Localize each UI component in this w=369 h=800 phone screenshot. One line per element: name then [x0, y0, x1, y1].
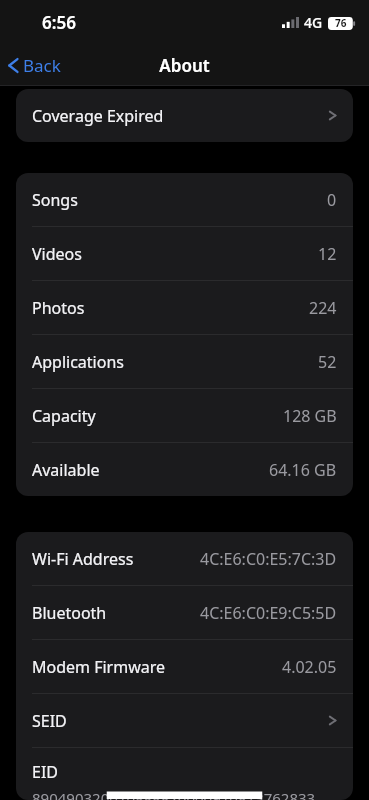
- button[interactable]: Capacity: [16, 389, 353, 442]
- button[interactable]: Back: [0, 49, 73, 82]
- staticText: Videos: [32, 243, 82, 265]
- other: Open SEID: [328, 713, 337, 728]
- staticText: 224: [309, 297, 337, 319]
- button[interactable]: Modem Firmware: [16, 640, 353, 693]
- staticText: Wi-Fi Address: [32, 548, 134, 570]
- staticText: Photos: [32, 297, 85, 319]
- staticText: 890490320070888826000970813762833: [32, 788, 316, 800]
- staticText: 4G: [304, 13, 323, 32]
- staticText: 4C:E6:C0:E9:C5:5D: [200, 602, 337, 624]
- staticText: 76: [335, 16, 347, 30]
- staticText: Applications: [32, 351, 124, 373]
- staticText: 4.02.05: [282, 656, 337, 678]
- button[interactable]: Coverage Expired: [16, 89, 353, 142]
- staticText: 6:56: [42, 11, 76, 34]
- staticText: Available: [32, 459, 100, 481]
- staticText: 0: [327, 189, 337, 211]
- other: Open Coverage Expired: [328, 108, 337, 123]
- staticText: Bluetooth: [32, 602, 107, 624]
- button[interactable]: Photos: [16, 281, 353, 334]
- button[interactable]: Bluetooth: [16, 586, 353, 639]
- button[interactable]: SEID: [16, 694, 353, 747]
- staticText: Back: [23, 54, 61, 77]
- staticText: 12: [318, 243, 337, 265]
- staticText: Modem Firmware: [32, 656, 166, 678]
- staticText: About: [159, 54, 210, 77]
- button[interactable]: Available: [16, 443, 353, 496]
- staticText: Coverage Expired: [32, 105, 164, 127]
- staticText: SEID: [32, 710, 67, 732]
- staticText: 64.16 GB: [269, 459, 337, 481]
- staticText: Capacity: [32, 405, 96, 427]
- button[interactable]: Applications: [16, 335, 353, 388]
- staticText: 52: [318, 351, 337, 373]
- staticText: 4C:E6:C0:E5:7C:3D: [200, 548, 337, 570]
- staticText: EID: [32, 761, 59, 783]
- button[interactable]: EID: [16, 748, 353, 800]
- staticText: 128 GB: [283, 405, 337, 427]
- button[interactable]: Songs: [16, 173, 353, 226]
- staticText: Songs: [32, 189, 78, 211]
- button[interactable]: Videos: [16, 227, 353, 280]
- button[interactable]: Wi-Fi Address: [16, 532, 353, 585]
